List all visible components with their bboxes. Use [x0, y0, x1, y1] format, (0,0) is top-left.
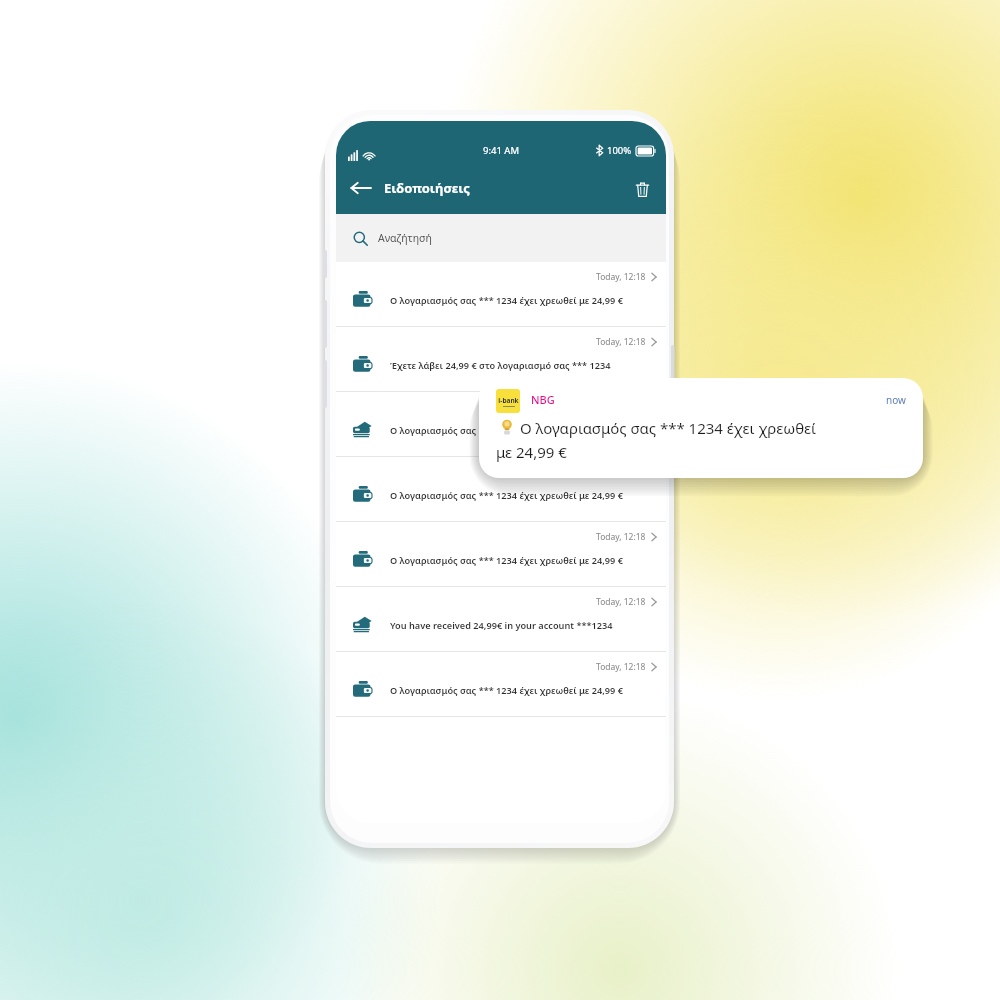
- button[interactable]: Today, 12:18: [336, 587, 666, 651]
- button[interactable]: Delete all notifications: [626, 173, 658, 205]
- staticText: Today, 12:18: [596, 596, 646, 608]
- staticText: Today, 12:18: [596, 336, 646, 348]
- staticText: Ο λογαριασμός σας *** 1234 έχει χρεωθεί …: [390, 489, 652, 502]
- staticText: Ο λογαριασμός σας *** 1234 έχει χρεωθεί …: [390, 294, 652, 307]
- button[interactable]: Today, 12:18: [336, 522, 666, 586]
- button[interactable]: Today, 12:18: [336, 652, 666, 716]
- staticText: Ο λογαριασμός σας *** 1234 έχει χρεωθεί …: [390, 424, 652, 437]
- button[interactable]: Today, 12:18: [336, 327, 666, 391]
- staticText: Αναζήτησή: [378, 231, 432, 245]
- button[interactable]: i-bank: [479, 378, 923, 478]
- staticText: Έχετε λάβει 24,99 € στο λογαριασμό σας *…: [390, 359, 652, 372]
- staticText: You have received 24,99€ in your account…: [390, 619, 652, 632]
- button[interactable]: Today, 12:18: [336, 457, 666, 521]
- button[interactable]: Today, 12:18: [336, 392, 666, 456]
- staticText: 9:41 AM: [483, 144, 520, 157]
- button[interactable]: Back: [344, 171, 378, 205]
- staticText: Ο λογαριασμός σας *** 1234 έχει χρεωθεί …: [390, 684, 652, 697]
- staticText: Ο λογαριασμός σας *** 1234 έχει χρεωθεί: [520, 418, 816, 438]
- staticText: i-bank: [498, 396, 519, 405]
- staticText: Ο λογαριασμός σας *** 1234 έχει χρεωθεί …: [390, 554, 652, 567]
- staticText: Today, 12:18: [596, 531, 646, 543]
- staticText: με 24,99 €: [496, 442, 567, 462]
- staticText: Today, 12:18: [596, 661, 646, 673]
- staticText: NBG: [531, 392, 555, 407]
- button[interactable]: Αναζήτησή: [336, 214, 666, 262]
- staticText: 100%: [607, 144, 632, 157]
- staticText: Today, 12:18: [596, 271, 646, 283]
- staticText: now: [886, 393, 906, 407]
- staticText: Ειδοποιήσεις: [384, 179, 470, 197]
- button[interactable]: Today, 12:18: [336, 262, 666, 326]
